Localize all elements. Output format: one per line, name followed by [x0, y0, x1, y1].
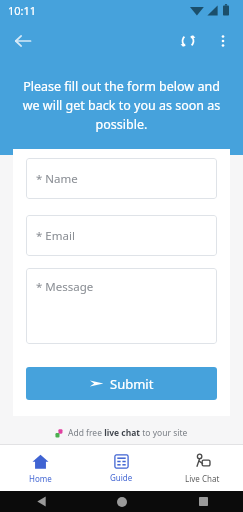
button[interactable]: Live Chat: [162, 445, 243, 491]
button[interactable]: Back: [4, 22, 42, 60]
staticText: 10:11: [8, 3, 37, 18]
staticText: * Message: [36, 279, 94, 295]
button[interactable]: * Message: [26, 268, 217, 344]
button[interactable]: Back: [26, 491, 56, 512]
button[interactable]: Home: [107, 491, 137, 512]
button[interactable]: * Email: [26, 215, 217, 256]
staticText: Guide: [110, 472, 133, 483]
staticText: * Name: [36, 171, 78, 187]
button[interactable]: Home: [0, 445, 81, 491]
button[interactable]: Guide: [81, 445, 162, 491]
staticText: Please fill out the form below and we wi…: [15, 78, 228, 133]
button[interactable]: * Name: [26, 158, 217, 199]
staticText: Add free live chat to your site: [68, 427, 188, 439]
staticText: Live Chat: [185, 473, 220, 484]
button[interactable]: Refresh: [169, 22, 207, 60]
staticText: Submit: [110, 375, 154, 393]
staticText: Home: [29, 473, 52, 484]
button[interactable]: Submit: [26, 367, 217, 400]
staticText: * Email: [36, 228, 75, 244]
button[interactable]: Recent apps: [188, 491, 218, 512]
button[interactable]: More options: [207, 25, 239, 57]
